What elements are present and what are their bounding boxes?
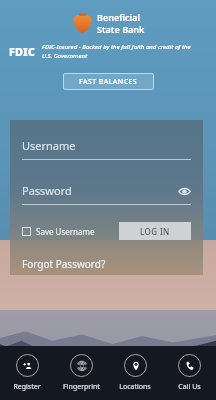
staticText: Username — [22, 138, 76, 153]
staticText: Password — [22, 183, 72, 198]
button[interactable]: LOG IN — [119, 222, 191, 240]
button[interactable]: Call Us — [162, 346, 216, 400]
staticText: Locations — [119, 382, 151, 392]
button[interactable]: Register — [0, 346, 54, 400]
staticText: State Bank — [97, 23, 145, 35]
staticText: Save Username — [36, 226, 95, 237]
button[interactable]: FAST BALANCES — [63, 73, 154, 90]
staticText: FDIC-Insured - Backed by the full faith … — [42, 43, 202, 60]
staticText: FDIC — [9, 44, 35, 59]
staticText: Forgot Password? — [22, 257, 106, 271]
button[interactable]: Save Username — [22, 226, 95, 237]
staticText: Call Us — [178, 382, 201, 392]
staticText: Fingerprint — [63, 382, 100, 392]
button[interactable]: Password — [22, 183, 191, 205]
staticText: FAST BALANCES — [79, 77, 138, 87]
button[interactable]: Fingerprint — [54, 346, 108, 400]
button[interactable]: Forgot Password? — [22, 257, 191, 271]
staticText: Beneficial — [97, 11, 140, 23]
staticText: LOG IN — [140, 226, 170, 237]
staticText: Register — [13, 382, 41, 392]
button[interactable]: Show password — [177, 184, 191, 198]
button[interactable]: Locations — [108, 346, 162, 400]
button[interactable]: Username — [22, 138, 191, 160]
